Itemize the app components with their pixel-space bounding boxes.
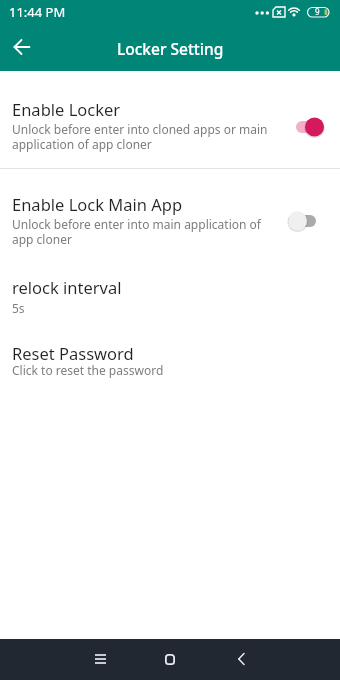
staticText: Reset Password <box>12 342 134 364</box>
staticText: 9 <box>315 6 320 17</box>
staticText: Locker Setting <box>117 38 224 59</box>
button[interactable]: Enable Lock Main App <box>0 169 340 256</box>
staticText: Enable Lock Main App <box>12 193 183 215</box>
staticText: Enable Locker <box>12 98 121 120</box>
button[interactable]: Reset Password <box>0 326 340 396</box>
button[interactable] <box>4 29 40 65</box>
staticText: Unlock before enter into cloned apps or … <box>12 121 268 152</box>
button[interactable]: relock interval <box>0 256 340 326</box>
staticText: 11:44 PM <box>9 3 66 21</box>
staticText: 5s <box>12 300 25 316</box>
button[interactable]: Enable Locker <box>0 71 340 168</box>
button[interactable] <box>223 641 259 677</box>
staticText: Click to reset the password <box>12 362 164 378</box>
button[interactable] <box>152 641 188 677</box>
staticText: relock interval <box>12 276 122 298</box>
button[interactable] <box>82 641 118 677</box>
staticText: Unlock before enter into main applicatio… <box>12 216 261 247</box>
